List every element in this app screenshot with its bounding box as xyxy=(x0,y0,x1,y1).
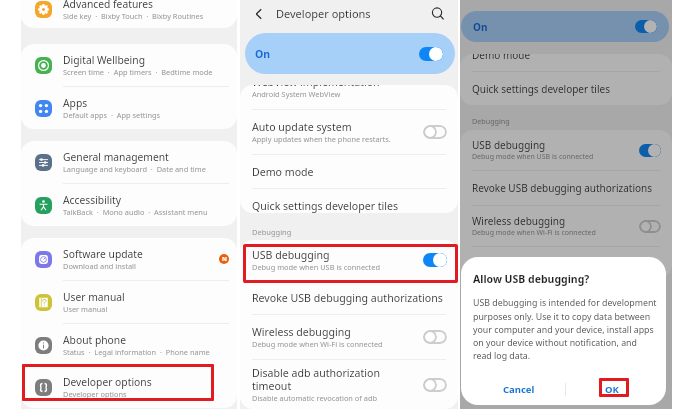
button[interactable]: Cancel xyxy=(473,373,565,405)
staticText: Auto update system xyxy=(252,120,352,134)
button[interactable]: Demo mode xyxy=(460,54,672,71)
staticText: Quick settings developer tiles xyxy=(472,82,610,96)
staticText: Developer options xyxy=(63,389,127,399)
staticText: Demo mode xyxy=(252,165,314,179)
staticText: Screen time · App timers · Bedtime mode xyxy=(63,67,213,77)
staticText: N xyxy=(222,255,227,263)
staticText: Quick settings developer tiles xyxy=(252,199,399,213)
button[interactable]: USB debugging xyxy=(460,130,672,170)
staticText: Android System WebView xyxy=(252,89,341,99)
staticText: Disable adb authorization timeout xyxy=(252,366,381,393)
button[interactable]: About phone xyxy=(21,324,237,366)
staticText: General management xyxy=(63,150,169,164)
staticText: User manual xyxy=(63,290,125,304)
button[interactable]: On xyxy=(461,11,669,42)
button[interactable]: Disable adb authorization timeout xyxy=(240,360,458,409)
staticText: Digital Wellbeing xyxy=(63,53,145,67)
staticText: Debugging xyxy=(252,227,292,237)
staticText: User manual xyxy=(63,304,108,314)
staticText: Allow USB debugging? xyxy=(473,272,590,286)
staticText: On xyxy=(473,20,488,34)
button[interactable]: WebView implementation xyxy=(240,85,458,109)
button[interactable]: Digital Wellbeing xyxy=(21,44,237,86)
button[interactable]: Auto update system xyxy=(240,110,458,154)
button[interactable]: Turn on xyxy=(423,330,447,344)
staticText: Revoke USB debugging authorizations xyxy=(472,181,653,195)
button[interactable]: Developer options xyxy=(21,366,237,408)
button[interactable]: Turn on xyxy=(423,378,447,392)
staticText: Developer options xyxy=(276,6,371,21)
button[interactable]: Turn off xyxy=(419,47,443,61)
staticText: OK xyxy=(605,383,619,396)
staticText: Advanced features xyxy=(63,0,154,11)
button[interactable]: User manual xyxy=(21,281,237,323)
staticText: Apps xyxy=(63,96,88,110)
staticText: USB debugging xyxy=(252,248,330,262)
staticText: About phone xyxy=(63,333,126,347)
button[interactable]: Advanced features xyxy=(21,0,237,28)
staticText: TalkBack · Mono audio · Assistant menu xyxy=(63,207,208,217)
button[interactable]: Demo mode xyxy=(240,155,458,188)
button[interactable]: USB debugging xyxy=(240,240,458,280)
staticText: USB debugging xyxy=(472,138,546,152)
button[interactable]: Search xyxy=(430,6,446,22)
staticText: WebView implementation xyxy=(252,85,380,89)
button[interactable]: Apps xyxy=(21,87,237,129)
staticText: On xyxy=(255,47,271,61)
staticText: USB debugging is intended for developmen… xyxy=(473,297,657,361)
staticText: Side key · Bixby Touch · Bixby Routines xyxy=(63,11,204,21)
button[interactable]: Turn on xyxy=(423,125,447,139)
button[interactable]: Turn off xyxy=(423,253,447,267)
button[interactable]: Turn on xyxy=(639,220,661,233)
staticText: Wireless debugging xyxy=(472,214,566,228)
staticText: Debug mode when USB is connected xyxy=(472,152,594,162)
button[interactable]: Turn off xyxy=(635,20,657,33)
button[interactable]: Quick settings developer tiles xyxy=(240,189,458,213)
staticText: Download and install xyxy=(63,261,136,271)
staticText: Status · Legal information · Phone name xyxy=(63,347,210,357)
staticText: Disable adb authorization xyxy=(472,256,593,270)
staticText: Debug mode when Wi-Fi is connected xyxy=(472,228,596,238)
staticText: Apply updates when the phone restarts. xyxy=(252,134,391,144)
button[interactable]: Revoke USB debugging authorizations xyxy=(460,171,672,205)
button[interactable]: General management xyxy=(21,141,237,183)
staticText: Demo mode xyxy=(472,54,531,62)
staticText: Disable automatic revocation of adb xyxy=(252,393,378,403)
button[interactable]: Revoke USB debugging authorizations xyxy=(240,281,458,314)
button[interactable]: OK xyxy=(566,373,658,405)
staticText: Developer options xyxy=(63,375,152,389)
staticText: Debug mode when Wi-Fi is connected xyxy=(252,339,383,349)
staticText: Accessibility xyxy=(63,193,122,207)
button[interactable]: On xyxy=(245,33,455,74)
staticText: Default apps · App settings xyxy=(63,110,161,120)
staticText: Revoke USB debugging authorizations xyxy=(252,291,443,305)
button[interactable]: Wireless debugging xyxy=(460,206,672,246)
staticText: Debug mode when USB is connected xyxy=(252,262,381,272)
staticText: Language and keyboard · Date and time xyxy=(63,164,206,174)
button[interactable]: Disable adb authorization xyxy=(460,247,672,278)
staticText: Debugging xyxy=(472,116,510,126)
button[interactable]: Wireless debugging xyxy=(240,315,458,359)
staticText: Cancel xyxy=(503,383,535,396)
button[interactable]: Accessibility xyxy=(21,184,237,226)
staticText: Wireless debugging xyxy=(252,325,351,339)
staticText: Software update xyxy=(63,247,143,261)
button[interactable]: Turn off xyxy=(639,144,661,157)
button[interactable]: Software update xyxy=(21,238,237,280)
button[interactable]: Back xyxy=(251,6,267,22)
button[interactable]: Quick settings developer tiles xyxy=(460,72,672,105)
